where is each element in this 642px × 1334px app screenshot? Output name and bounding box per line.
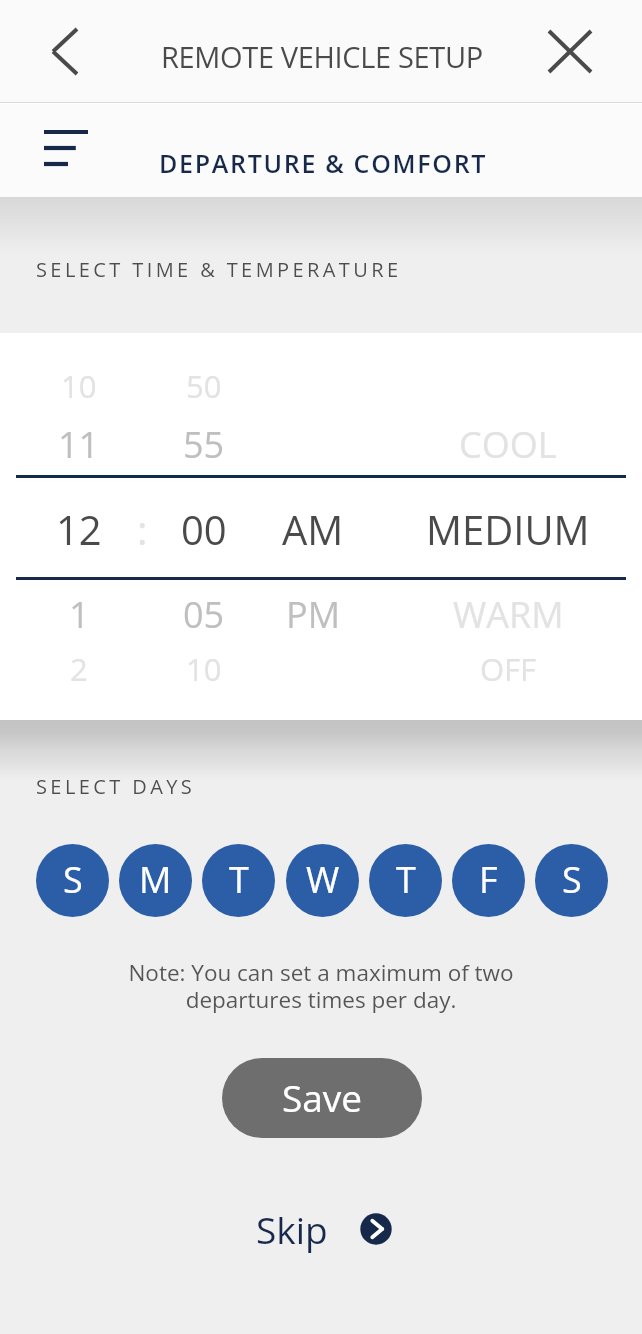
button[interactable]: S (36, 844, 109, 917)
button[interactable]: W (286, 844, 359, 917)
staticText: AM (282, 502, 344, 556)
staticText: Skip (256, 1204, 328, 1254)
staticText: : (137, 502, 148, 556)
staticText: 10 (186, 648, 222, 690)
button[interactable]: Close (540, 16, 602, 86)
button[interactable]: S (535, 844, 608, 917)
button[interactable]: M (119, 844, 192, 917)
staticText: 2 (70, 648, 88, 690)
staticText: 00 (181, 502, 227, 556)
staticText: S (63, 855, 83, 904)
staticText: 55 (183, 420, 225, 469)
staticText: 05 (183, 590, 225, 639)
button[interactable]: T (202, 844, 275, 917)
button[interactable]: F (452, 844, 525, 917)
staticText: S (562, 855, 582, 904)
button[interactable]: T (369, 844, 442, 917)
staticText: SELECT DAYS (36, 773, 196, 800)
staticText: COOL (459, 420, 557, 469)
staticText: 50 (186, 365, 222, 407)
staticText: DEPARTURE & COMFORT (159, 146, 488, 180)
staticText: F (479, 855, 498, 904)
button[interactable]: Menu (38, 123, 94, 175)
staticText: 1 (69, 590, 90, 639)
staticText: 11 (58, 420, 100, 469)
staticText: M (139, 855, 172, 904)
staticText: W (306, 855, 340, 904)
staticText: T (229, 855, 249, 904)
staticText: Save (282, 1072, 363, 1122)
button[interactable]: Back (38, 16, 94, 86)
button[interactable]: Save (222, 1058, 422, 1138)
staticText: WARM (453, 590, 564, 639)
staticText: SELECT TIME & TEMPERATURE (36, 256, 402, 283)
button[interactable]: Skip (256, 1199, 392, 1259)
staticText: 10 (61, 365, 97, 407)
staticText: Note: You can set a maximum of two depar… (0, 957, 642, 1015)
staticText: PM (286, 590, 341, 639)
staticText: T (396, 855, 416, 904)
staticText: MEDIUM (426, 502, 590, 556)
staticText: REMOTE VEHICLE SETUP (161, 37, 483, 76)
staticText: OFF (480, 648, 537, 690)
staticText: 12 (56, 502, 102, 556)
